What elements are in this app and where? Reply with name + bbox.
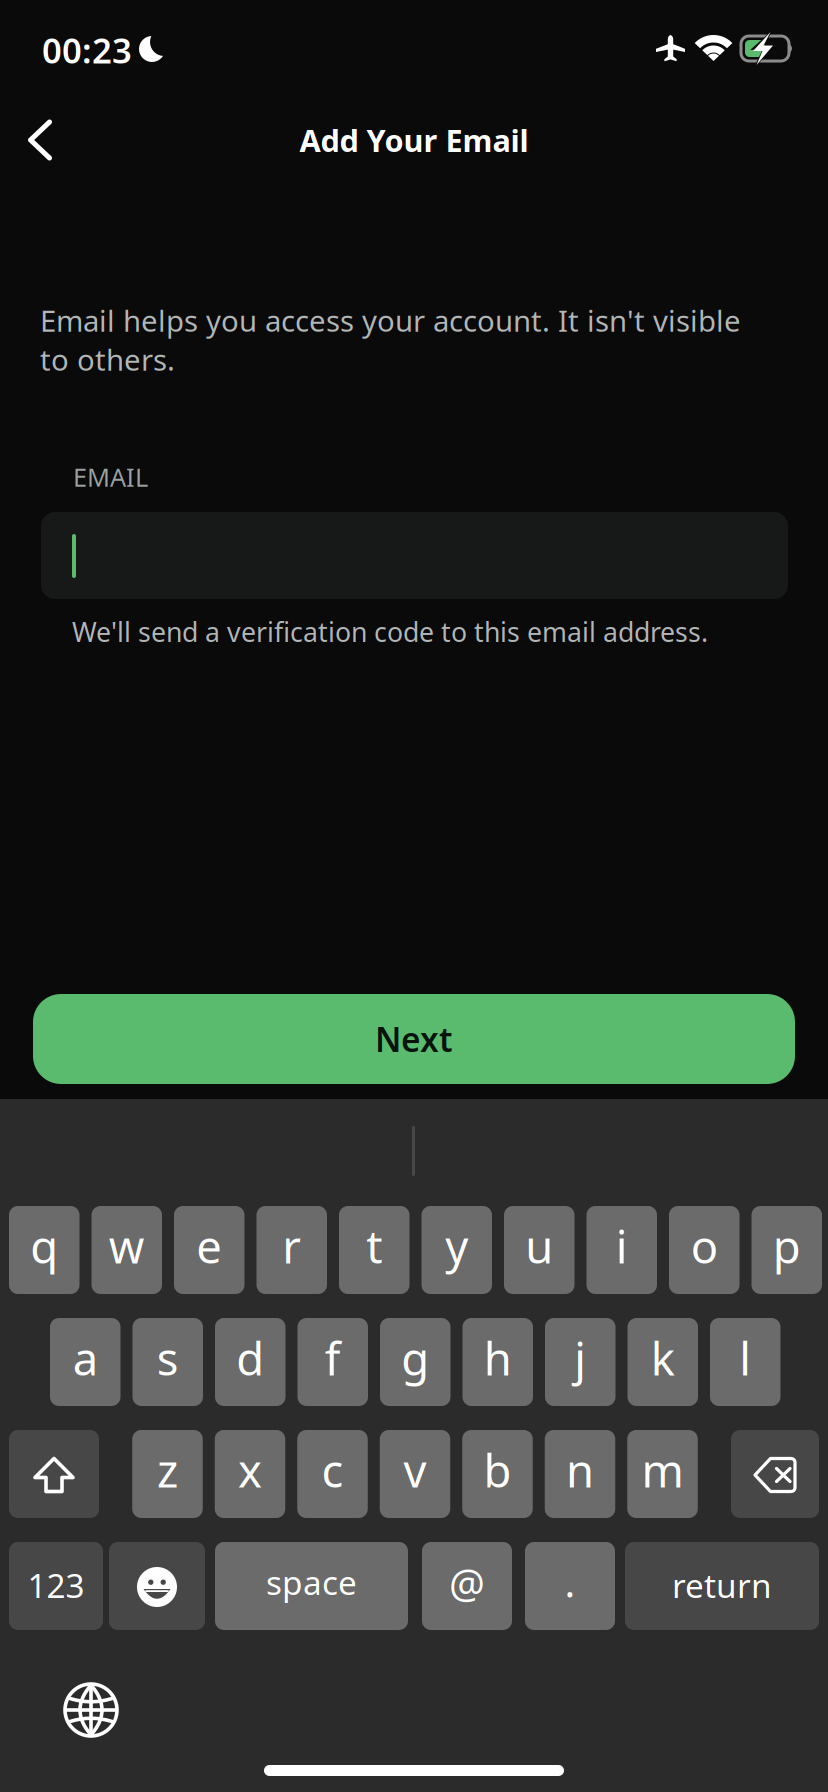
staticText: c (321, 1440, 343, 1500)
staticText: b (483, 1440, 511, 1500)
button[interactable]: c (297, 1430, 368, 1518)
staticText: j (574, 1328, 586, 1388)
staticText: w (109, 1216, 145, 1276)
button[interactable]: f (297, 1318, 368, 1406)
staticText: h (484, 1328, 512, 1388)
button[interactable]: z (132, 1430, 203, 1518)
staticText: e (196, 1216, 222, 1276)
button[interactable]: h (462, 1318, 533, 1406)
staticText: z (157, 1440, 178, 1500)
button[interactable]: u (504, 1206, 574, 1294)
staticText: g (401, 1328, 429, 1388)
staticText: . (564, 1555, 575, 1608)
button[interactable]: v (380, 1430, 450, 1518)
button[interactable]: e (174, 1206, 244, 1294)
button[interactable]: Emoji (109, 1542, 205, 1630)
button[interactable]: return (625, 1542, 819, 1630)
staticText: o (691, 1216, 718, 1276)
button[interactable]: . (525, 1542, 615, 1630)
staticText: v (403, 1440, 426, 1500)
staticText: i (616, 1216, 628, 1276)
staticText: l (739, 1328, 751, 1388)
staticText: n (566, 1440, 594, 1500)
staticText: p (773, 1216, 801, 1276)
button[interactable]: Next (33, 994, 795, 1084)
button[interactable]: Next keyboard (65, 1684, 117, 1736)
button[interactable]: 123 (9, 1542, 103, 1630)
staticText: m (641, 1440, 683, 1500)
staticText: q (30, 1216, 58, 1276)
button[interactable]: i (586, 1206, 657, 1294)
staticText: Next (375, 1017, 453, 1061)
staticText: s (157, 1328, 179, 1388)
button[interactable]: l (710, 1318, 780, 1406)
button[interactable]: a (50, 1318, 120, 1406)
staticText: space (266, 1560, 357, 1604)
button[interactable]: q (9, 1206, 79, 1294)
staticText: return (672, 1563, 772, 1607)
button[interactable]: g (380, 1318, 450, 1406)
button[interactable]: m (627, 1430, 698, 1518)
staticText: k (651, 1328, 675, 1388)
button[interactable]: w (91, 1206, 162, 1294)
button[interactable]: d (215, 1318, 285, 1406)
staticText: u (525, 1216, 553, 1276)
button[interactable]: Back (9, 109, 71, 171)
button[interactable]: y (421, 1206, 492, 1294)
button[interactable]: Shift (9, 1430, 99, 1518)
staticText: r (282, 1216, 301, 1276)
button[interactable]: Delete (731, 1430, 819, 1518)
button[interactable]: x (215, 1430, 285, 1518)
staticText: a (73, 1328, 98, 1388)
staticText: y (445, 1216, 468, 1276)
button[interactable]: b (462, 1430, 533, 1518)
button[interactable]: @ (422, 1542, 512, 1630)
staticText: Email helps you access your account. It … (40, 301, 741, 379)
staticText: t (366, 1216, 382, 1276)
button[interactable]: p (751, 1206, 822, 1294)
button[interactable]: r (256, 1206, 327, 1294)
staticText: We'll send a verification code to this e… (72, 614, 708, 649)
button[interactable]: n (545, 1430, 615, 1518)
staticText: 123 (27, 1563, 84, 1607)
button[interactable]: s (132, 1318, 203, 1406)
button[interactable]: k (627, 1318, 698, 1406)
button[interactable]: o (669, 1206, 739, 1294)
staticText: @ (449, 1556, 485, 1609)
button[interactable]: j (545, 1318, 615, 1406)
staticText: Add Your Email (299, 120, 528, 160)
staticText: f (325, 1328, 341, 1388)
button[interactable]: t (339, 1206, 409, 1294)
staticText: EMAIL (73, 460, 148, 494)
button[interactable]: space (215, 1542, 408, 1630)
staticText: d (236, 1328, 264, 1388)
staticText: 00:23 (42, 27, 132, 73)
staticText: x (238, 1440, 262, 1500)
